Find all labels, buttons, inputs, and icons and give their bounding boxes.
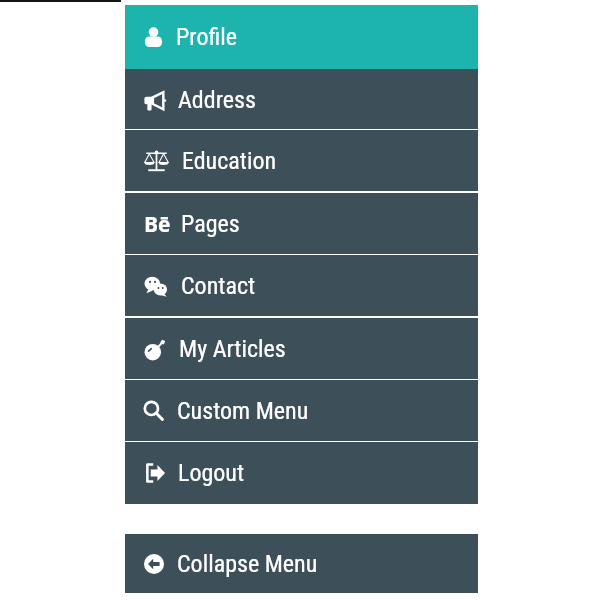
staticText: Pages: [181, 210, 240, 238]
staticText: Profile: [176, 23, 237, 51]
button[interactable]: Address: [125, 69, 478, 131]
staticText: Custom Menu: [177, 397, 309, 425]
staticText: Address: [178, 86, 256, 114]
button[interactable]: Collapse Menu: [125, 534, 478, 593]
button[interactable]: Education: [125, 130, 478, 192]
staticText: Logout: [178, 459, 245, 487]
button[interactable]: Contact: [125, 255, 478, 317]
button[interactable]: My Articles: [125, 318, 478, 380]
button[interactable]: Profile: [125, 5, 478, 69]
button[interactable]: Bē: [125, 193, 478, 255]
staticText: Contact: [181, 272, 256, 300]
staticText: Collapse Menu: [177, 550, 318, 578]
staticText: Education: [182, 147, 277, 175]
button[interactable]: Logout: [125, 442, 478, 504]
button[interactable]: Custom Menu: [125, 380, 478, 442]
staticText: Bē: [144, 210, 171, 239]
staticText: My Articles: [179, 335, 286, 363]
